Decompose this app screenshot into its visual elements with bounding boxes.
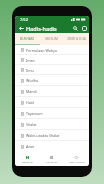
button[interactable]: Permulaan Wahyu	[15, 45, 89, 55]
button[interactable]: Bookmarks	[80, 24, 89, 33]
button[interactable]: Azan	[15, 141, 89, 152]
staticText: Shalat	[26, 122, 37, 127]
staticText: Daftar Isi	[22, 160, 33, 163]
button[interactable]: Shalat	[15, 119, 89, 130]
button[interactable]: Iman	[15, 55, 89, 65]
button[interactable]: Back	[17, 24, 26, 33]
button[interactable]: BUKHARI	[15, 33, 39, 45]
button[interactable]: Mandi	[15, 86, 89, 97]
staticText: 7:52	[20, 17, 28, 22]
staticText: Wudhu	[26, 78, 39, 83]
button[interactable]: Ilmu	[15, 65, 89, 75]
staticText: Pencarian	[46, 160, 58, 163]
button[interactable]: ZIKIR & DOA	[64, 33, 89, 45]
staticText: Ilmu	[26, 68, 34, 73]
staticText: Permulaan Wahyu	[26, 48, 57, 53]
button[interactable]: Haid	[15, 97, 89, 108]
staticText: Tags / Catatan	[69, 160, 85, 163]
staticText: Haid	[26, 100, 34, 105]
button[interactable]: Waktu-waktu Shalat	[15, 130, 89, 141]
button[interactable]: MUSLIM	[39, 33, 64, 45]
staticText: ZIKIR & DOA	[67, 37, 86, 41]
staticText: Waktu-waktu Shalat	[26, 133, 60, 138]
button[interactable]: Wudhu	[15, 75, 89, 86]
button[interactable]: Tags / Catatan	[64, 152, 89, 166]
button[interactable]: Pencarian	[39, 152, 64, 166]
staticText: Iman	[26, 58, 35, 63]
staticText: Hadis-hadis	[26, 25, 57, 32]
staticText: Tayamum	[26, 111, 43, 116]
button[interactable]: Daftar Isi	[15, 152, 39, 166]
staticText: BUKHARI	[20, 37, 34, 41]
staticText: Azan	[26, 144, 35, 149]
staticText: Mandi	[26, 89, 37, 94]
button[interactable]: Search	[71, 24, 80, 33]
staticText: MUSLIM	[45, 37, 58, 41]
button[interactable]: Tayamum	[15, 108, 89, 119]
